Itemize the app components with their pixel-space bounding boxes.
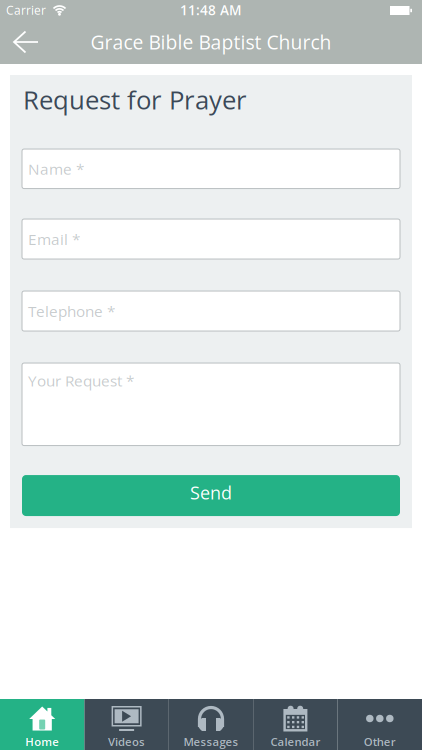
staticText: Other (364, 734, 396, 749)
button[interactable]: Videos (84, 699, 169, 750)
staticText: 11:48 AM (180, 1, 242, 19)
button[interactable]: Messages (169, 699, 253, 750)
button[interactable]: Home (0, 699, 84, 750)
button[interactable]: Back (0, 20, 38, 63)
button[interactable]: Other (338, 699, 422, 750)
staticText: Messages (183, 734, 238, 749)
button[interactable]: Send (22, 475, 400, 516)
staticText: Carrier (6, 2, 46, 18)
staticText: Request for Prayer (23, 82, 247, 117)
staticText: Send (190, 480, 232, 505)
staticText: Grace Bible Baptist Church (90, 29, 331, 55)
staticText: Telephone * (28, 301, 115, 321)
staticText: Name * (28, 158, 84, 179)
staticText: Videos (108, 734, 145, 749)
staticText: Email * (28, 229, 80, 249)
button[interactable]: Calendar (253, 699, 338, 750)
staticText: Calendar (270, 734, 320, 749)
staticText: Home (25, 734, 59, 749)
staticText: Your Request * (28, 370, 134, 391)
